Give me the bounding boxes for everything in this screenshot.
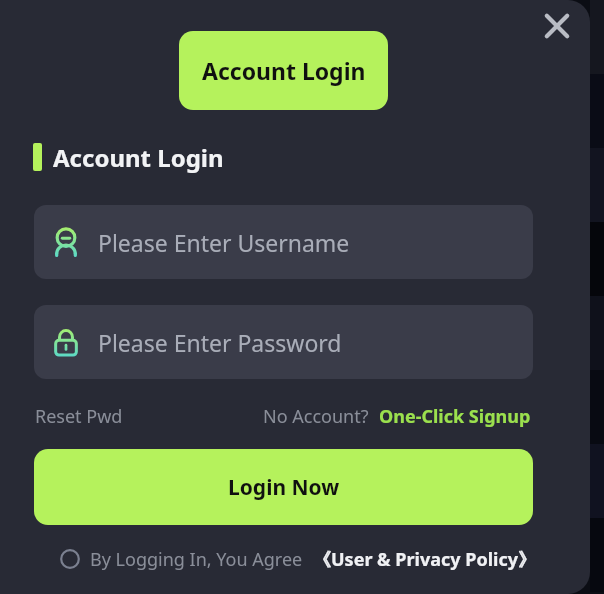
staticText: By Logging In, You Agree [90,547,303,572]
staticText: Account Login [53,141,224,174]
button[interactable]: One-Click Signup [377,401,533,432]
staticText: 《User & Privacy Policy》 [313,547,536,572]
button[interactable]: Account Login [179,31,388,110]
button[interactable]: Login Now [34,449,533,525]
staticText: Please Enter Username [98,227,350,258]
button[interactable]: Agree to policy [54,543,86,575]
staticText: Reset Pwd [35,404,123,429]
staticText: Login Now [228,473,340,502]
staticText: One-Click Signup [379,404,531,429]
staticText: No Account? [263,404,369,429]
button[interactable]: 《User & Privacy Policy》 [312,544,537,575]
staticText: Account Login [202,55,366,86]
button[interactable]: Please Enter Password [34,305,533,379]
button[interactable]: Please Enter Username [34,205,533,279]
button[interactable]: Reset Pwd [33,401,125,432]
button[interactable]: Close [531,0,583,52]
staticText: Please Enter Password [98,327,342,358]
